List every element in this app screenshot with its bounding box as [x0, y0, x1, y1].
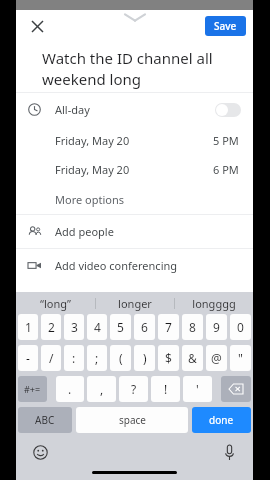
- staticText: ,: [100, 381, 104, 397]
- button[interactable]: done: [192, 407, 251, 433]
- staticText: :: [72, 350, 76, 366]
- button[interactable]: 8: [182, 314, 203, 340]
- staticText: 5 PM: [213, 133, 239, 148]
- button[interactable]: 3: [64, 314, 84, 340]
- staticText: Save: [214, 19, 237, 33]
- button[interactable]: More options: [16, 184, 253, 214]
- staticText: longggg: [192, 296, 236, 311]
- staticText: 0: [237, 319, 244, 335]
- staticText: 6 PM: [213, 162, 239, 177]
- staticText: Add video conferencing: [55, 258, 178, 273]
- button[interactable]: Save: [205, 16, 246, 36]
- button[interactable]: (: [110, 345, 131, 371]
- button[interactable]: #+=: [18, 376, 47, 402]
- button[interactable]: space: [76, 407, 188, 433]
- staticText: .: [68, 381, 72, 397]
- button[interactable]: @: [206, 345, 227, 371]
- staticText: Friday, May 20: [55, 133, 130, 148]
- staticText: 4: [94, 319, 101, 335]
- button[interactable]: longggg: [175, 292, 253, 314]
- staticText: @: [211, 350, 222, 366]
- button[interactable]: 7: [158, 314, 179, 340]
- button[interactable]: ?: [119, 376, 148, 402]
- staticText: More options: [55, 192, 124, 207]
- button[interactable]: -: [18, 345, 38, 371]
- button[interactable]: 2: [41, 314, 61, 340]
- staticText: (: [119, 350, 123, 366]
- staticText: 6: [141, 319, 148, 335]
- staticText: 8: [189, 319, 196, 335]
- button[interactable]: ,: [87, 376, 116, 402]
- button[interactable]: !: [151, 376, 180, 402]
- button[interactable]: .: [56, 376, 84, 402]
- button[interactable]: Close: [22, 11, 52, 41]
- staticText: ": [238, 350, 243, 366]
- button[interactable]: $: [158, 345, 179, 371]
- staticText: ): [143, 350, 147, 366]
- staticText: Add people: [55, 224, 114, 239]
- button[interactable]: 6: [134, 314, 155, 340]
- staticText: $: [165, 350, 172, 366]
- button[interactable]: Friday, May 20: [16, 155, 253, 184]
- staticText: 7: [165, 319, 172, 335]
- button[interactable]: ): [134, 345, 155, 371]
- button[interactable]: 1: [18, 314, 38, 340]
- staticText: longer: [118, 296, 152, 311]
- staticText: Watch the ID channel all weekend long: [42, 48, 239, 90]
- staticText: All-day: [55, 102, 90, 117]
- button[interactable]: Voice input: [219, 442, 239, 462]
- staticText: &: [188, 350, 197, 366]
- staticText: 9: [213, 319, 220, 335]
- button[interactable]: 4: [87, 314, 107, 340]
- button[interactable]: ": [230, 345, 251, 371]
- button[interactable]: Add people: [16, 215, 253, 248]
- button[interactable]: Backspace: [221, 376, 251, 402]
- button[interactable]: ;: [87, 345, 107, 371]
- staticText: ABC: [35, 413, 55, 427]
- button[interactable]: :: [64, 345, 84, 371]
- button[interactable]: Emoji: [30, 442, 50, 462]
- staticText: 5: [117, 319, 124, 335]
- staticText: “long”: [40, 296, 71, 311]
- button[interactable]: ABC: [18, 407, 72, 433]
- staticText: 3: [71, 319, 78, 335]
- staticText: ?: [131, 381, 137, 397]
- staticText: 1: [25, 319, 32, 335]
- button[interactable]: longer: [96, 292, 174, 314]
- staticText: /: [49, 350, 54, 366]
- staticText: -: [26, 350, 30, 366]
- staticText: ': [196, 381, 199, 397]
- button[interactable]: All-day: [16, 93, 253, 126]
- button[interactable]: 0: [230, 314, 251, 340]
- button[interactable]: /: [41, 345, 61, 371]
- button[interactable]: Add video conferencing: [16, 249, 253, 282]
- button[interactable]: &: [182, 345, 203, 371]
- button[interactable]: 5: [110, 314, 131, 340]
- button[interactable]: ': [183, 376, 212, 402]
- staticText: ;: [95, 350, 99, 366]
- staticText: 2: [48, 319, 55, 335]
- staticText: #+=: [24, 383, 41, 395]
- staticText: done: [209, 413, 234, 427]
- staticText: Friday, May 20: [55, 162, 130, 177]
- button[interactable]: Friday, May 20: [16, 126, 253, 155]
- staticText: space: [119, 413, 146, 427]
- button[interactable]: “long”: [16, 292, 95, 314]
- staticText: !: [164, 381, 168, 397]
- button[interactable]: 9: [206, 314, 227, 340]
